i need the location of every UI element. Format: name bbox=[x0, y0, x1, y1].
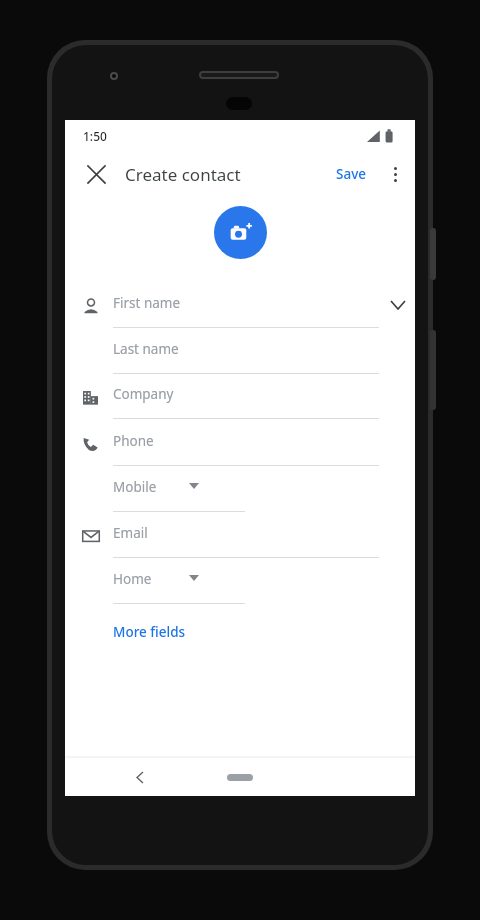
staticText: 1:50 bbox=[83, 128, 107, 144]
button[interactable]: More options bbox=[375, 154, 415, 194]
button[interactable]: Home bbox=[113, 564, 245, 604]
button[interactable]: Save bbox=[328, 157, 375, 191]
button[interactable]: Email bbox=[113, 518, 379, 558]
button[interactable]: Close bbox=[74, 152, 118, 196]
staticText: Company bbox=[113, 385, 174, 403]
button[interactable]: Last name bbox=[113, 334, 379, 374]
staticText: Create contact bbox=[125, 163, 241, 186]
staticText: Home bbox=[113, 570, 152, 588]
button[interactable]: Mobile bbox=[113, 472, 245, 512]
button[interactable]: More fields bbox=[105, 617, 194, 647]
button[interactable]: Phone bbox=[113, 426, 379, 466]
button[interactable]: Home bbox=[227, 774, 253, 781]
button[interactable]: Back bbox=[123, 760, 157, 794]
staticText: Mobile bbox=[113, 478, 157, 496]
button[interactable]: Expand name fields bbox=[381, 288, 415, 322]
button[interactable]: Company bbox=[113, 379, 379, 419]
button[interactable]: First name bbox=[113, 288, 379, 328]
staticText: Email bbox=[113, 524, 148, 542]
staticText: Save bbox=[336, 165, 367, 183]
staticText: Last name bbox=[113, 340, 179, 358]
staticText: First name bbox=[113, 294, 181, 312]
staticText: Phone bbox=[113, 432, 154, 450]
button[interactable]: Add photo bbox=[214, 206, 267, 259]
staticText: More fields bbox=[113, 623, 186, 641]
